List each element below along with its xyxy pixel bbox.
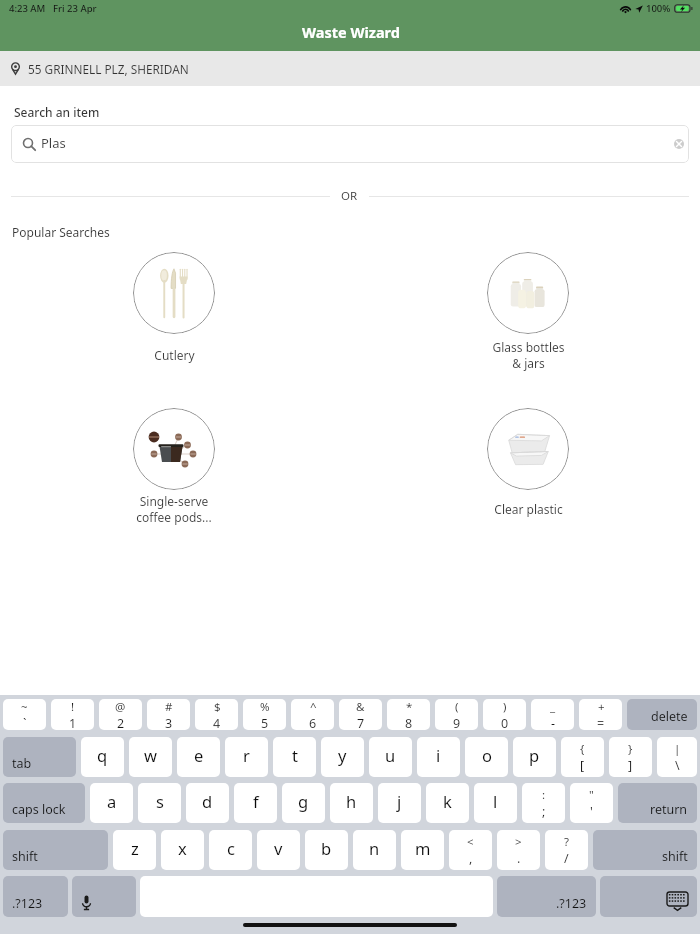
button[interactable]: w [129,737,172,777]
staticText: n [369,837,380,859]
staticText: 100% [646,2,671,15]
button[interactable]: v [257,830,300,870]
button[interactable]: l [474,783,517,823]
staticText: h [346,790,357,812]
button[interactable]: Hide keyboard [600,876,697,917]
staticText: u [385,744,396,766]
button[interactable]: " [570,783,613,823]
button[interactable]: % [243,699,286,730]
staticText: & [356,699,365,715]
button[interactable]: shift [593,830,697,870]
staticText: shift [12,848,38,865]
staticText: f [253,790,259,812]
button[interactable]: z [113,830,156,870]
button[interactable]: @ [99,699,142,730]
staticText: z [131,837,139,859]
button[interactable]: ~ [3,699,46,730]
staticText: s [156,790,164,812]
button[interactable]: n [353,830,396,870]
button[interactable]: .?123 [3,876,68,917]
button[interactable]: ( [435,699,478,730]
staticText: 2 [117,715,125,730]
button[interactable]: p [513,737,556,777]
button[interactable]: caps lock [3,783,85,823]
staticText: 9 [453,715,461,730]
staticText: ! [71,699,75,715]
button[interactable]: .?123 [497,876,596,917]
staticText: % [260,699,270,715]
button[interactable]: : [522,783,565,823]
staticText: delete [651,708,688,725]
button[interactable]: * [387,699,430,730]
staticText: tab [12,755,32,772]
button[interactable]: Plas [11,125,689,163]
button[interactable]: _ [531,699,574,730]
button[interactable]: # [147,699,190,730]
button[interactable]: h [330,783,373,823]
button[interactable]: g [282,783,325,823]
staticText: 3 [165,715,173,730]
staticText: Search an item [14,104,100,120]
staticText: Plas [41,134,66,152]
button[interactable]: f [234,783,277,823]
button[interactable]: ^ [291,699,334,730]
button[interactable]: shift [3,830,108,870]
staticText: 5 [261,715,269,730]
button[interactable]: a [90,783,133,823]
staticText: caps lock [12,801,66,818]
staticText: m [415,837,431,859]
staticText: = [597,715,605,730]
button[interactable]: d [186,783,229,823]
button[interactable]: q [81,737,124,777]
button[interactable]: c [209,830,252,870]
button[interactable]: s [138,783,181,823]
button[interactable]: > [497,830,540,870]
button[interactable]: ! [51,699,94,730]
staticText: c [227,837,235,859]
button[interactable]: u [369,737,412,777]
button[interactable]: Dictation [72,876,136,917]
staticText: ] [628,757,633,774]
staticText: v [274,837,283,859]
staticText: e [194,744,204,766]
staticText: - [551,715,556,730]
button[interactable]: x [161,830,204,870]
button[interactable]: $ [195,699,238,730]
button[interactable]: m [401,830,444,870]
button[interactable]: } [609,737,652,777]
button[interactable]: e [177,737,220,777]
button[interactable]: Single-serve coffee pods... [0,408,349,526]
button[interactable]: j [378,783,421,823]
button[interactable]: { [561,737,604,777]
staticText: { [580,741,585,757]
staticText: + [598,699,605,715]
button[interactable]: + [579,699,622,730]
staticText: y [338,744,347,766]
staticText: Clear plastic [494,501,563,517]
button[interactable]: return [618,783,697,823]
button[interactable]: ) [483,699,526,730]
button[interactable]: tab [3,737,76,777]
staticText: ; [542,803,546,820]
staticText: ' [590,803,593,820]
button[interactable]: o [465,737,508,777]
button[interactable]: i [417,737,460,777]
button[interactable]: y [321,737,364,777]
staticText: 7 [357,715,365,730]
button[interactable]: b [305,830,348,870]
button[interactable]: t [273,737,316,777]
button[interactable]: Clear search [670,135,688,153]
button[interactable]: 55 GRINNELL PLZ, SHERIDAN [0,51,700,86]
button[interactable]: delete [627,699,697,730]
button[interactable]: < [449,830,492,870]
button[interactable]: ? [545,830,588,870]
button[interactable]: | [657,737,697,777]
button[interactable]: r [225,737,268,777]
staticText: ( [455,699,459,715]
button[interactable]: Clear plastic [353,408,700,526]
button[interactable]: & [339,699,382,730]
button[interactable]: Glass bottles & jars [353,252,700,370]
button[interactable]: k [426,783,469,823]
button[interactable]: Cutlery [0,252,349,370]
